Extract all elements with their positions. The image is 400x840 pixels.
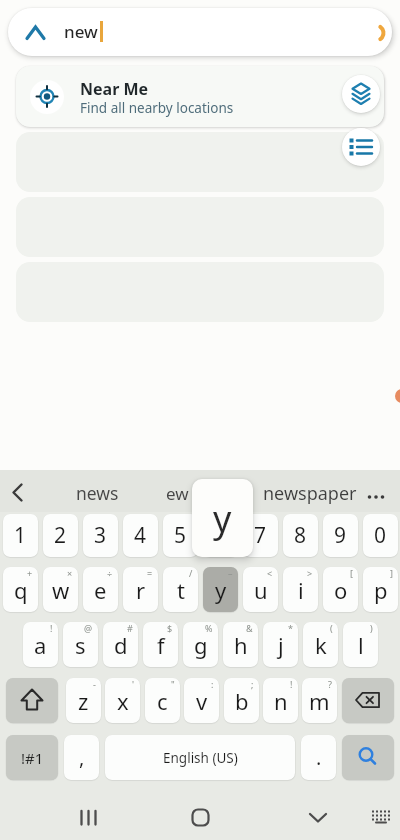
staticText: !#1: [21, 748, 44, 768]
button[interactable]: f: [143, 622, 178, 667]
staticText: ": [171, 678, 175, 690]
button[interactable]: [342, 75, 380, 113]
button[interactable]: s: [63, 622, 98, 667]
button[interactable]: o: [323, 567, 358, 612]
button[interactable]: .: [301, 735, 336, 780]
staticText: 9: [334, 521, 347, 550]
staticText: 5: [174, 521, 187, 550]
staticText: 2: [54, 521, 67, 550]
button[interactable]: n: [263, 678, 298, 723]
staticText: -: [93, 678, 96, 690]
staticText: ÷: [107, 567, 113, 579]
staticText: a: [34, 630, 47, 660]
staticText: ): [370, 622, 373, 634]
button[interactable]: [342, 678, 394, 723]
button[interactable]: g: [183, 622, 218, 667]
button[interactable]: u: [243, 567, 278, 612]
button[interactable]: k: [303, 622, 338, 667]
button[interactable]: e: [83, 567, 118, 612]
staticText: –: [228, 567, 233, 579]
button[interactable]: English (US): [105, 735, 295, 780]
button[interactable]: v: [184, 678, 219, 723]
staticText: m: [309, 686, 330, 716]
button[interactable]: ,: [64, 735, 99, 780]
staticText: 7: [254, 521, 267, 550]
button[interactable]: l: [343, 622, 378, 667]
button[interactable]: m: [302, 678, 337, 723]
button[interactable]: !#1: [6, 735, 58, 780]
staticText: l: [358, 630, 364, 660]
staticText: *: [288, 622, 293, 634]
button[interactable]: h: [223, 622, 258, 667]
button[interactable]: r: [123, 567, 158, 612]
staticText: k: [315, 630, 327, 660]
button[interactable]: [342, 735, 394, 780]
button[interactable]: 5: [163, 514, 198, 557]
button[interactable]: w: [43, 567, 78, 612]
button[interactable]: [298, 798, 338, 838]
button[interactable]: new: [8, 8, 392, 56]
staticText: j: [278, 630, 284, 660]
staticText: 3: [94, 521, 107, 550]
staticText: &: [246, 622, 253, 634]
button[interactable]: [6, 678, 58, 723]
button[interactable]: 2: [43, 514, 78, 557]
staticText: ?: [328, 678, 332, 690]
staticText: $: [167, 622, 173, 634]
button[interactable]: b: [224, 678, 259, 723]
button[interactable]: q: [3, 567, 38, 612]
button[interactable]: x: [105, 678, 140, 723]
button[interactable]: p: [363, 567, 398, 612]
staticText: Near Me: [80, 78, 149, 100]
staticText: ,: [79, 744, 85, 771]
button[interactable]: 3: [83, 514, 118, 557]
button[interactable]: Near Me: [16, 66, 384, 127]
button[interactable]: 9: [323, 514, 358, 557]
button[interactable]: 7: [243, 514, 278, 557]
button[interactable]: 6: [203, 514, 238, 557]
button[interactable]: [180, 798, 220, 838]
staticText: 1: [14, 521, 27, 550]
staticText: !: [50, 622, 53, 634]
staticText: English (US): [163, 749, 238, 767]
staticText: e: [94, 575, 107, 605]
staticText: ]: [390, 567, 393, 579]
staticText: ew: [166, 482, 189, 505]
button[interactable]: c: [145, 678, 180, 723]
button[interactable]: d: [103, 622, 138, 667]
button[interactable]: 1: [3, 514, 38, 557]
button[interactable]: y: [203, 567, 238, 612]
staticText: +: [27, 567, 33, 579]
staticText: 8: [294, 521, 307, 550]
button[interactable]: j: [263, 622, 298, 667]
staticText: =: [147, 567, 153, 579]
staticText: 4: [134, 521, 147, 550]
staticText: r: [136, 575, 146, 605]
staticText: Find all nearby locations: [80, 99, 234, 117]
staticText: %: [205, 622, 213, 634]
button[interactable]: a: [23, 622, 58, 667]
staticText: z: [78, 686, 89, 716]
button[interactable]: t: [163, 567, 198, 612]
staticText: /: [189, 567, 193, 579]
button[interactable]: 8: [283, 514, 318, 557]
staticText: 0: [374, 521, 387, 550]
staticText: w: [52, 575, 70, 605]
button[interactable]: i: [283, 567, 318, 612]
button[interactable]: [342, 128, 380, 166]
button[interactable]: [70, 798, 110, 838]
button[interactable]: [364, 798, 398, 832]
button[interactable]: 4: [123, 514, 158, 557]
button[interactable]: z: [66, 678, 101, 723]
button[interactable]: 0: [363, 514, 398, 557]
staticText: x: [117, 686, 129, 716]
staticText: q: [14, 575, 28, 605]
staticText: news: [76, 481, 119, 505]
staticText: y: [215, 575, 227, 605]
staticText: u: [254, 575, 268, 605]
staticText: :: [211, 678, 214, 690]
staticText: !: [290, 678, 293, 690]
staticText: o: [334, 575, 348, 605]
staticText: new: [64, 20, 98, 43]
staticText: ;: [251, 678, 254, 690]
